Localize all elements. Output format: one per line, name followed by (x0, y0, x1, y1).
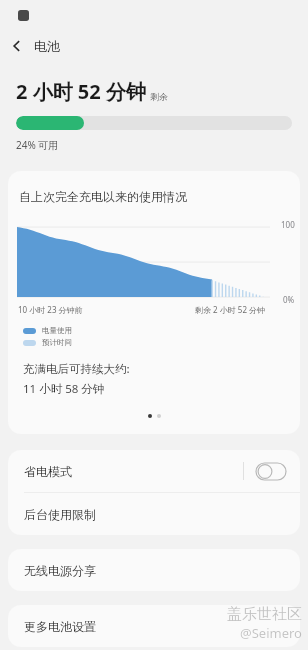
staticText: 100 (281, 219, 295, 230)
button[interactable]: 更多电池设置 (8, 605, 300, 647)
staticText: 电池 (34, 38, 60, 54)
staticText: 剩余 (150, 91, 168, 102)
staticText: 更多电池设置 (24, 619, 96, 634)
staticText: 省电模式 (24, 464, 243, 479)
button[interactable]: Back (0, 30, 34, 62)
staticText: 24% 可用 (16, 138, 59, 152)
staticText: 10 小时 23 分钟前 (18, 304, 83, 315)
staticText: @Seimero (240, 624, 302, 642)
staticText: 后台使用限制 (24, 507, 96, 522)
staticText: 自上次完全充电以来的使用情况 (19, 189, 187, 204)
staticText: 充满电后可持续大约: (23, 361, 130, 377)
staticText: 剩余 2 小时 52 分钟 (195, 304, 266, 315)
staticText: 无线电源分享 (24, 563, 96, 578)
staticText: 电量使用 (42, 326, 72, 335)
staticText: 11 小时 58 分钟 (23, 381, 105, 397)
staticText: 盖乐世社区 (227, 605, 302, 624)
button[interactable]: 自上次完全充电以来的使用情况 (8, 171, 300, 434)
button[interactable]: 后台使用限制 (8, 493, 300, 535)
button[interactable]: 无线电源分享 (8, 549, 300, 591)
button[interactable]: 省电模式 (8, 450, 300, 492)
staticText: 2 小时 52 分钟 (16, 78, 146, 105)
button[interactable]: Power saving toggle (256, 463, 286, 480)
staticText: 预计时间 (42, 338, 72, 347)
staticText: 0% (283, 294, 295, 305)
